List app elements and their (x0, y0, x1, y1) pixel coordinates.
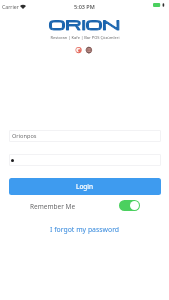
button[interactable]: Orionpos (9, 130, 161, 142)
staticText: Carrier (2, 3, 19, 10)
button[interactable]: Remember Me (119, 200, 140, 211)
button[interactable]: I forgot my password (48, 223, 122, 236)
button[interactable]: Remember Me (30, 200, 76, 212)
staticText: Restoran | Kafe | Bar POS Çözümleri (50, 35, 120, 40)
button[interactable]: Login (9, 178, 161, 195)
staticText: Login (76, 182, 94, 191)
staticText: Remember Me (30, 202, 76, 211)
staticText: 5:03 PM (74, 3, 95, 10)
staticText: ORION (49, 16, 120, 34)
button[interactable] (9, 154, 161, 166)
staticText: Orionpos (12, 132, 37, 140)
staticText: ORION (49, 16, 120, 34)
